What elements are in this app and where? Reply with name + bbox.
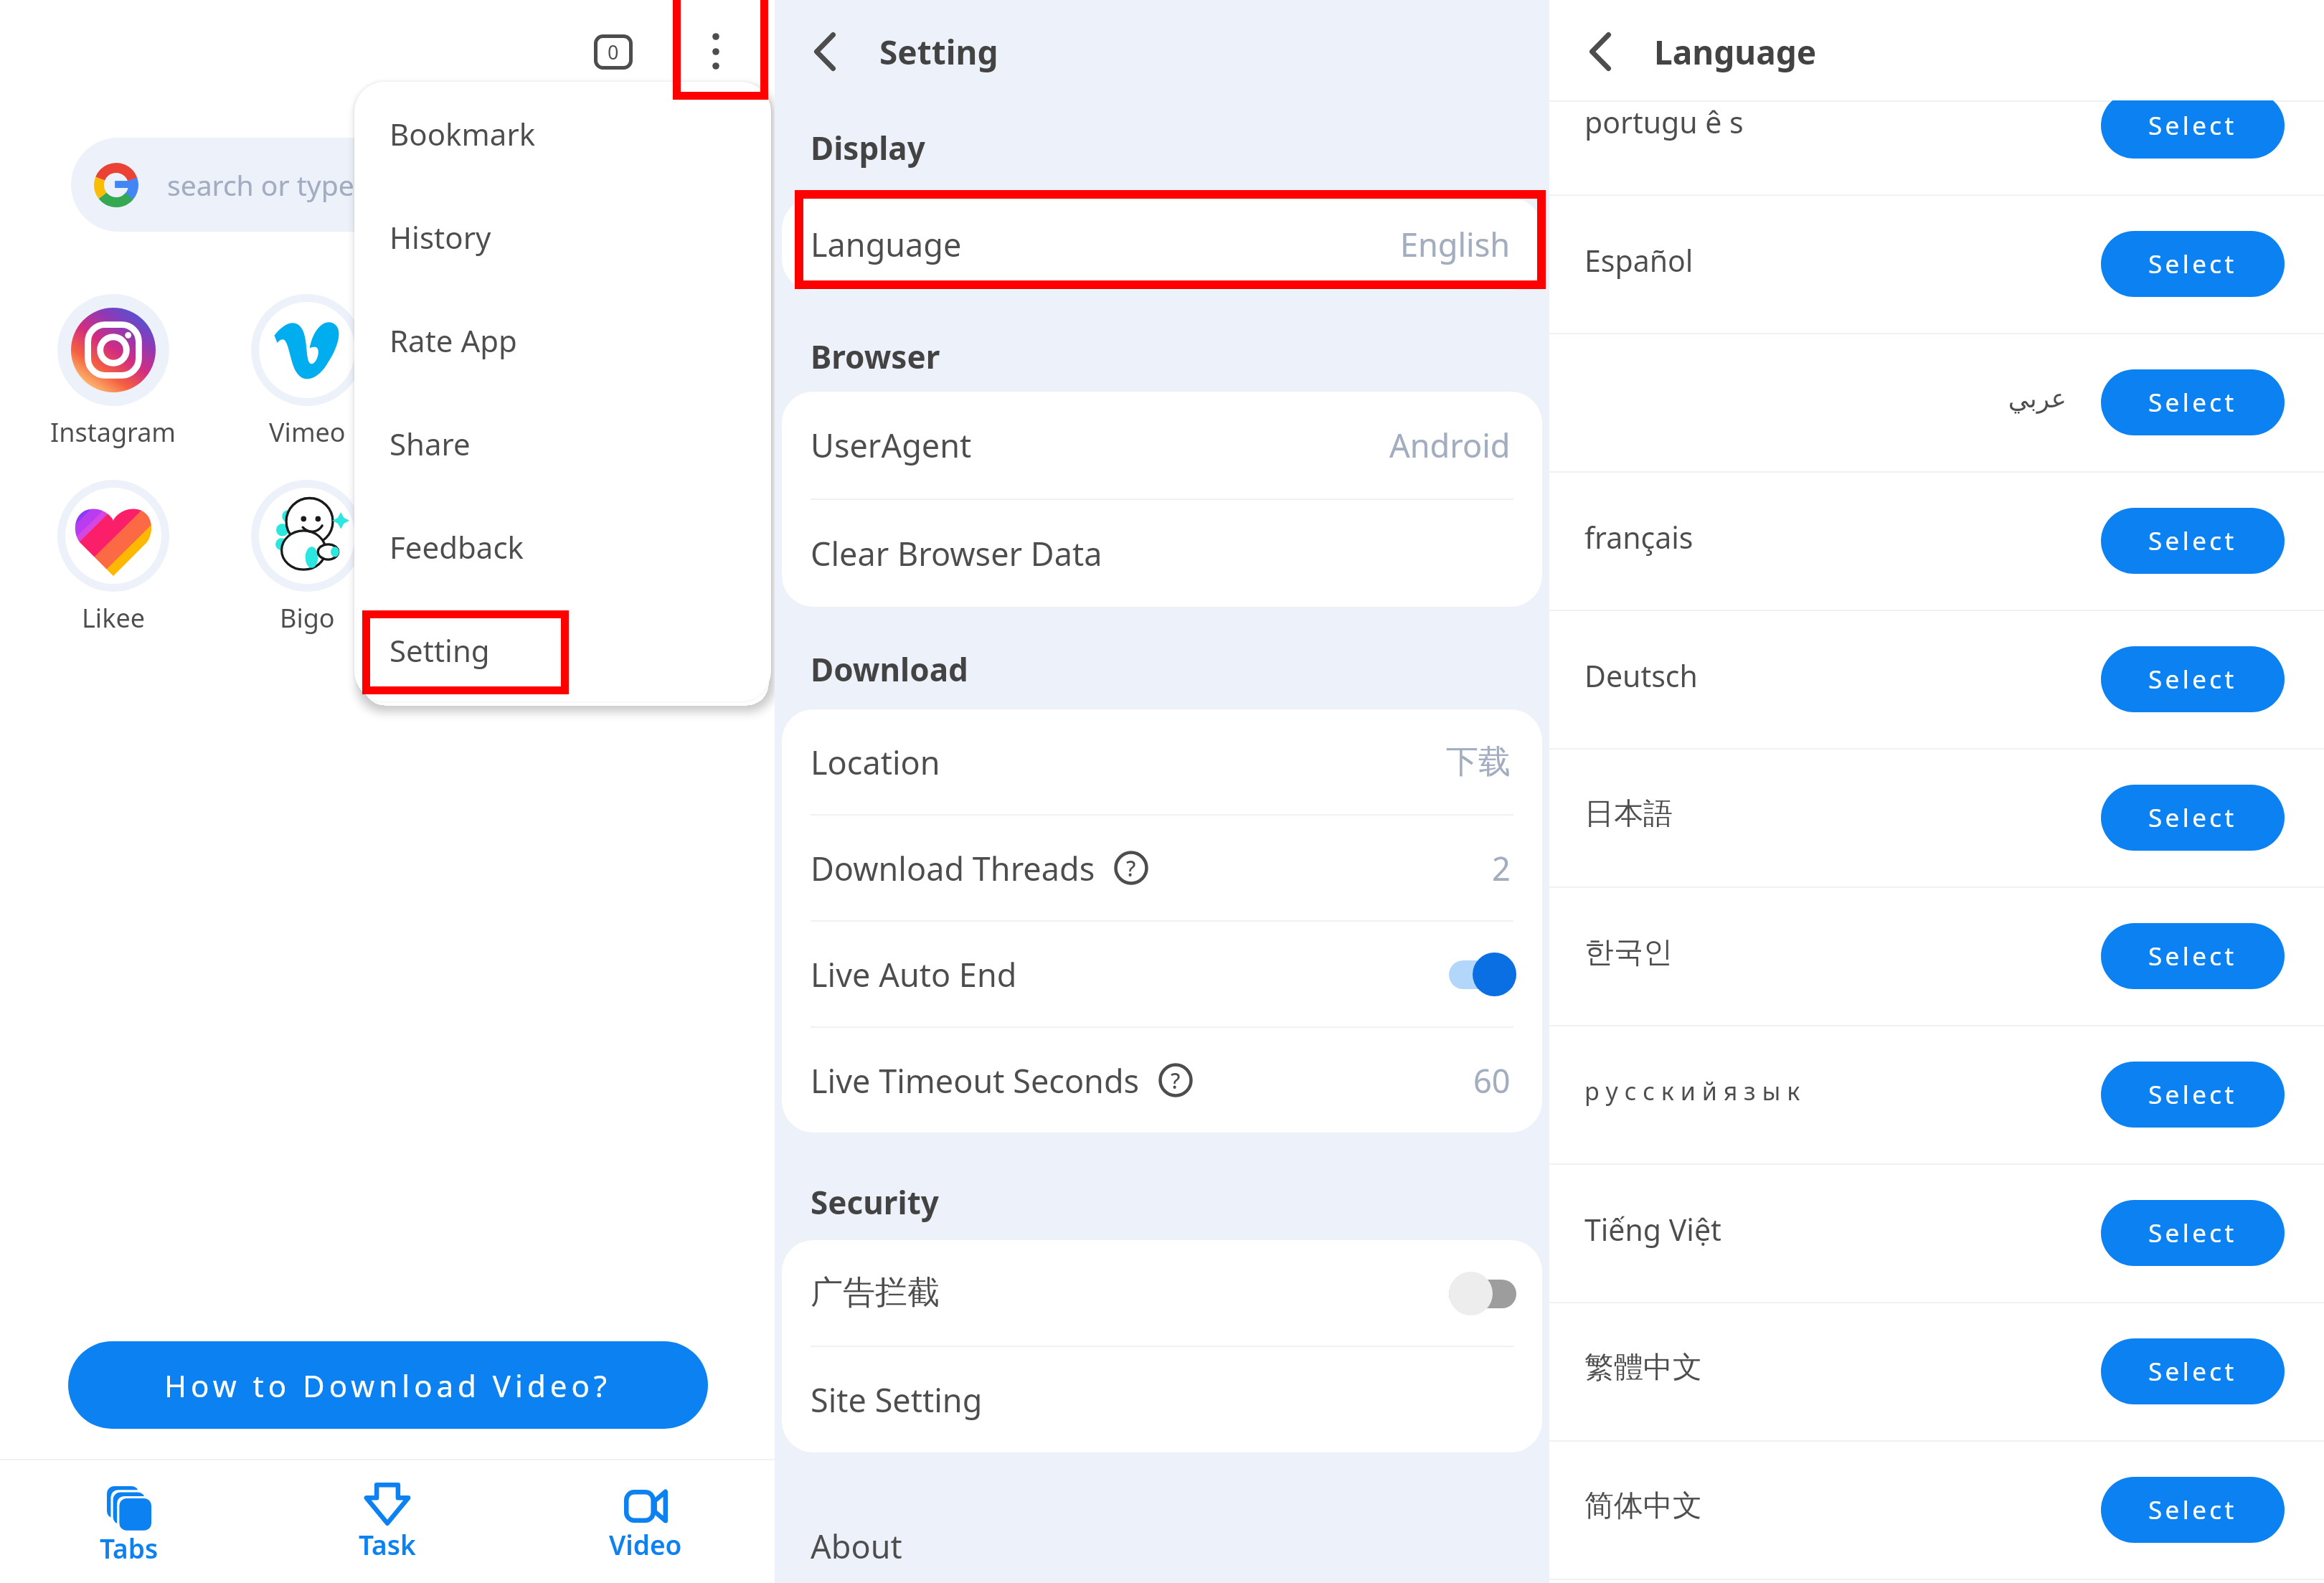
staticText: Site Setting [811,1378,983,1422]
button[interactable]: 한국인 [1549,887,2324,1025]
button[interactable]: 日本語 [1549,748,2324,887]
button[interactable]: Tabs [0,1460,258,1583]
staticText: Instagram [50,415,176,450]
button[interactable]: 繁體中文 [1549,1302,2324,1440]
button[interactable]: Tiếng Việt [1549,1163,2324,1302]
button[interactable]: Select [2101,369,2285,435]
staticText: 简体中文 [1584,1488,1702,1525]
staticText: Live Timeout Seconds [811,1059,1140,1102]
staticText: Android [1389,423,1511,467]
button[interactable]: Feedback [354,495,771,598]
button[interactable]: Switch off [1449,1271,1516,1315]
button[interactable]: عربي [1549,333,2324,471]
button[interactable]: Deutsch [1549,610,2324,748]
staticText: Select [2148,939,2237,973]
staticText: 0 [608,39,619,65]
button[interactable]: Select [2101,1062,2285,1128]
staticText: Display [811,126,925,169]
button[interactable]: Español [1549,194,2324,333]
staticText: Language [811,222,962,266]
button[interactable]: Select [2101,785,2285,851]
button[interactable]: Select [2101,1338,2285,1404]
staticText: Language [1654,29,1817,75]
staticText: Location [811,740,940,784]
button[interactable]: Live Timeout Seconds [782,1028,1542,1133]
button[interactable]: Share [354,392,771,495]
button[interactable]: р у с с к и й я з ы к [1549,1025,2324,1163]
button[interactable]: 广告拦截 [782,1240,1542,1346]
button[interactable]: Video [516,1460,775,1583]
button[interactable]: Select [2101,1200,2285,1266]
button[interactable]: portugu ê s [1549,56,2324,194]
button[interactable]: Likee [34,480,192,635]
button[interactable]: UserAgent [782,392,1542,498]
button[interactable]: Setting [354,598,771,701]
staticText: 繁體中文 [1584,1349,1702,1386]
button[interactable]: Select [2101,508,2285,574]
button[interactable]: Download Threads [782,816,1542,920]
staticText: Setting [389,630,490,671]
button[interactable]: Clear Browser Data [782,500,1542,607]
button[interactable]: français [1549,471,2324,610]
staticText: Tiếng Việt [1584,1209,1721,1249]
staticText: Bookmark [389,113,536,154]
staticText: français [1584,517,1694,557]
button[interactable]: Select [2101,93,2285,159]
staticText: Browser [811,335,940,378]
staticText: Video [609,1526,682,1562]
staticText: Deutsch [1584,656,1698,696]
button[interactable]: Select [2101,231,2285,297]
button[interactable]: Vimeo [228,294,386,450]
button[interactable]: Back [1564,16,1636,88]
staticText: English [1400,222,1511,266]
staticText: About [811,1524,902,1568]
staticText: Select [2148,524,2237,558]
button[interactable]: Back [789,16,861,88]
button[interactable]: Location [782,709,1542,814]
staticText: 2 [1492,846,1511,890]
button[interactable]: Rate App [354,288,771,392]
staticText: Feedback [389,526,524,567]
button[interactable]: Switch on [1449,952,1516,996]
staticText: Vimeo [269,415,346,450]
staticText: ? [1171,1066,1181,1095]
button[interactable]: Tab count [594,34,633,70]
button[interactable]: How to Download Video? [68,1341,708,1429]
staticText: 日本語 [1584,795,1673,833]
staticText: ? [1126,854,1136,883]
button[interactable]: Bigo [228,480,386,635]
button[interactable]: Bookmark [354,82,771,185]
staticText: Tabs [100,1530,159,1566]
staticText: Select [2148,1077,2237,1112]
button[interactable]: History [354,185,771,288]
button[interactable]: search or type url [71,138,710,232]
button[interactable]: Select [2101,646,2285,712]
staticText: Select [2148,1354,2237,1389]
staticText: How to Download Video? [164,1365,612,1406]
button[interactable]: Back [1564,16,1636,88]
staticText: Setting [879,29,998,75]
staticText: 60 [1473,1059,1511,1102]
button[interactable]: More options [687,22,745,80]
button[interactable]: Instagram [34,294,192,450]
staticText: 广告拦截 [811,1272,940,1313]
staticText: Share [389,423,471,464]
staticText: Clear Browser Data [811,531,1102,575]
button[interactable]: Select [2101,923,2285,989]
button[interactable]: Language [782,198,1542,290]
staticText: Likee [82,600,145,635]
staticText: Security [811,1181,939,1224]
button[interactable]: Site Setting [782,1347,1542,1452]
staticText: 下载 [1446,742,1511,783]
staticText: р у с с к и й я з ы к [1584,1074,1800,1107]
staticText: Task [359,1526,416,1562]
staticText: Language [1654,29,1817,75]
button[interactable]: Live Auto End [782,922,1542,1026]
button[interactable]: Select [2101,1477,2285,1543]
button[interactable]: Task [258,1460,516,1583]
staticText: Select [2148,662,2237,696]
staticText: Select [2148,247,2237,281]
staticText: Select [2148,1493,2237,1527]
staticText: Español [1584,240,1694,280]
button[interactable]: 简体中文 [1549,1440,2324,1579]
